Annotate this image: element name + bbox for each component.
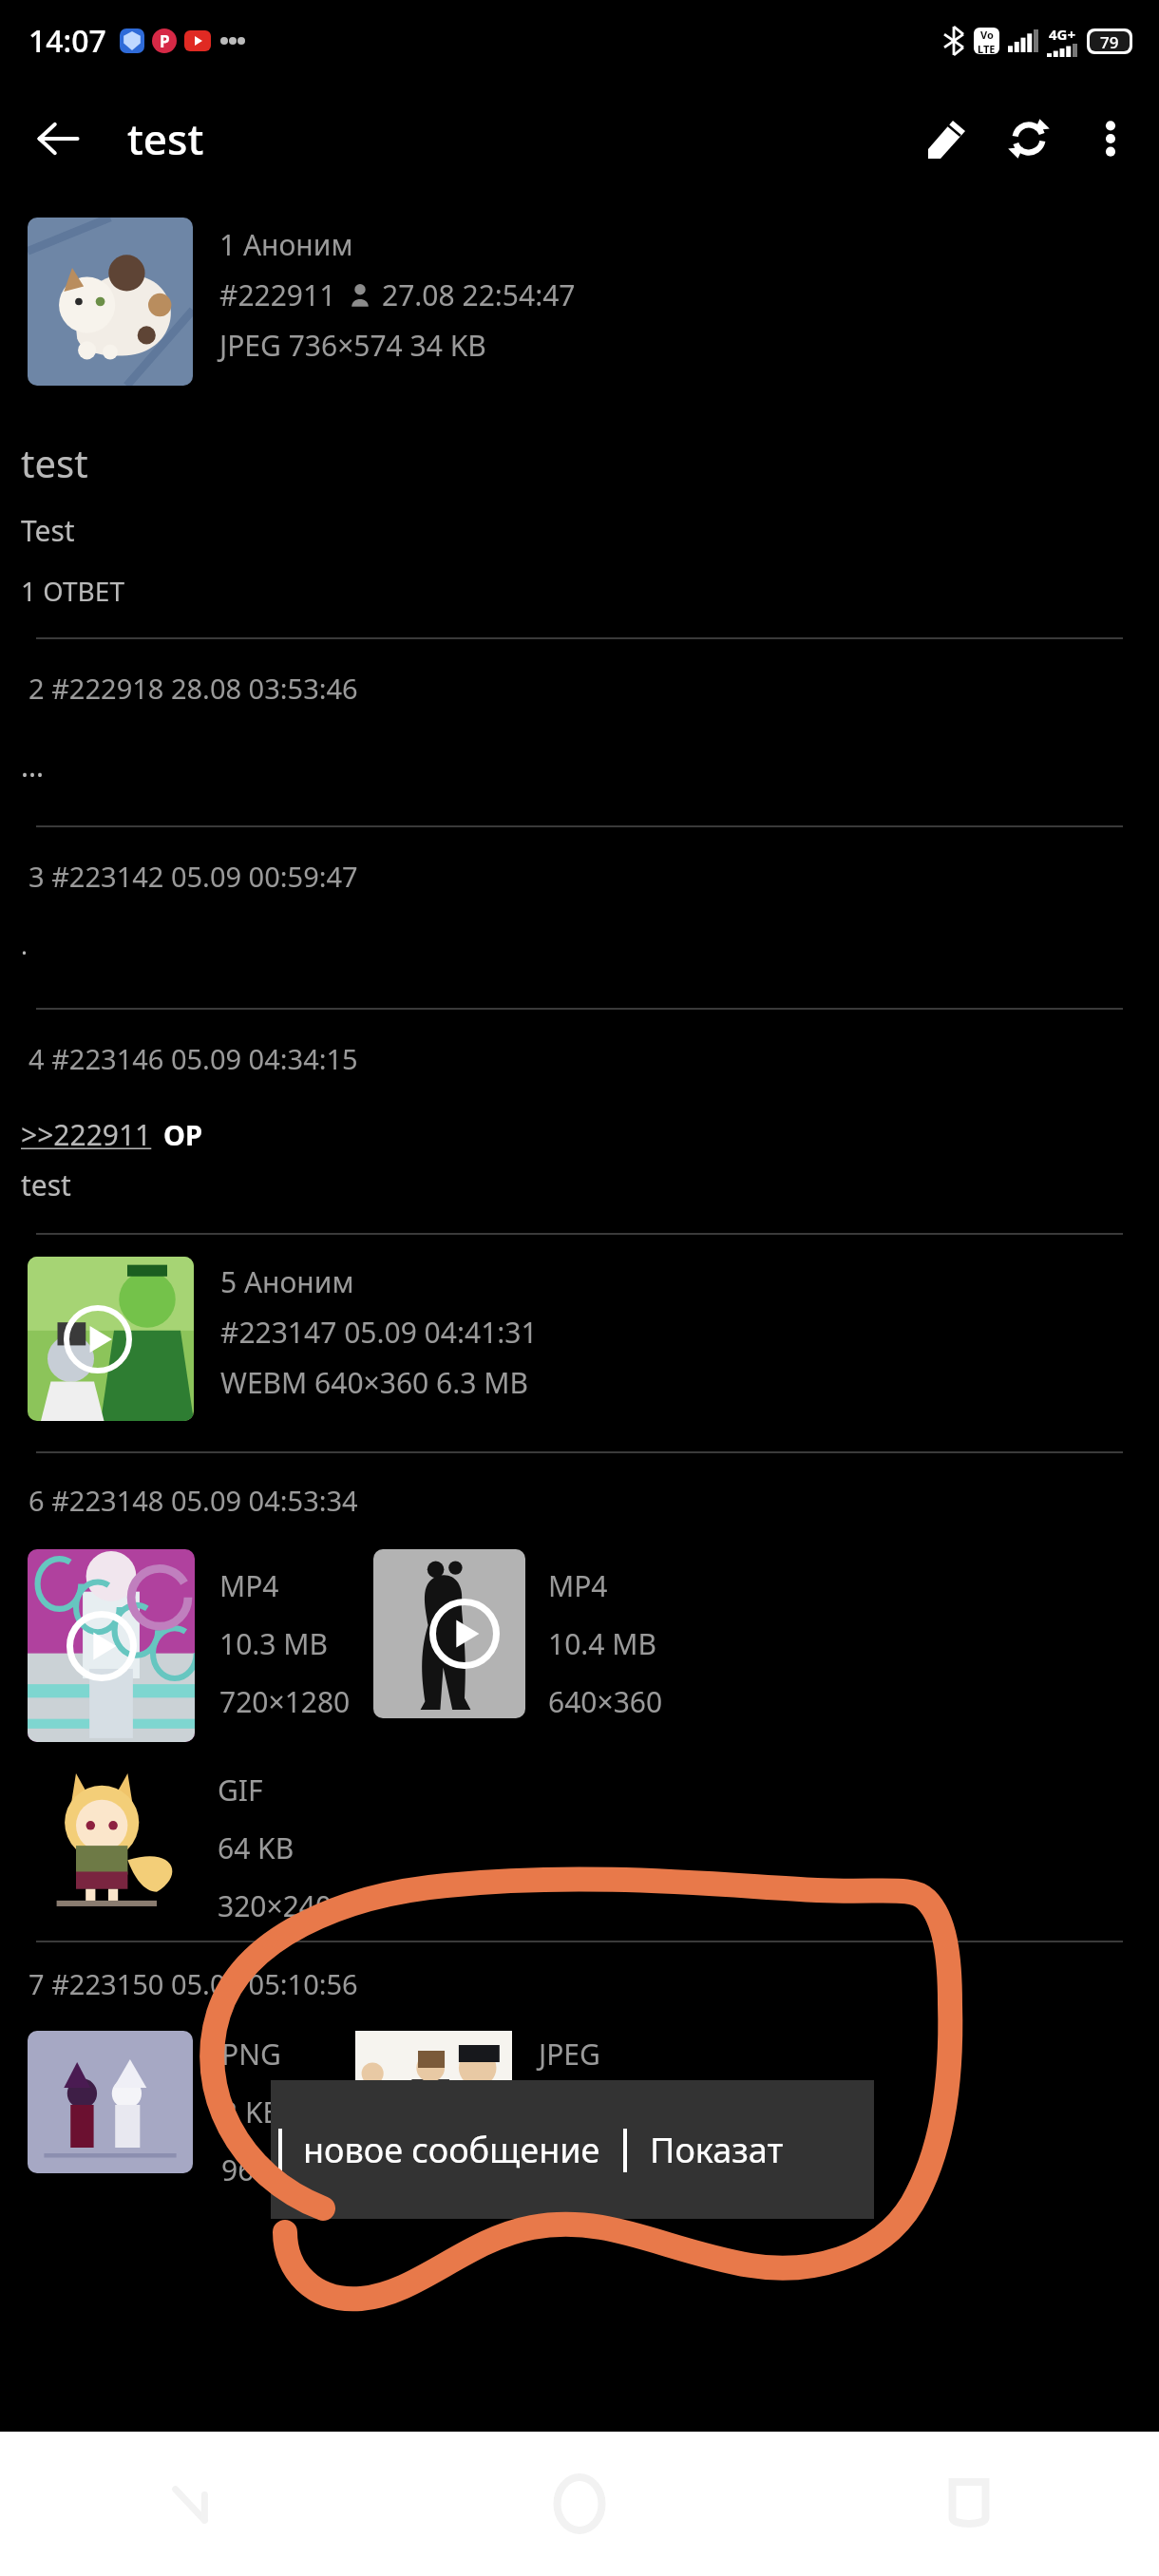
staticText: 14:07 bbox=[28, 20, 106, 62]
staticText: 6 #223148 05.09 04:53:34 bbox=[28, 1482, 358, 1519]
staticText: P bbox=[160, 30, 170, 52]
staticText: 320×240 bbox=[218, 1886, 332, 1925]
button[interactable]: 3 #223142 05.09 00:59:47 bbox=[0, 827, 1159, 1008]
button[interactable]: новое сообщение bbox=[271, 2080, 874, 2219]
button[interactable]: More options bbox=[1070, 98, 1151, 180]
staticText: · bbox=[21, 935, 28, 968]
staticText: 3 #223142 05.09 00:59:47 bbox=[28, 858, 358, 895]
staticText: GIF bbox=[218, 1771, 263, 1809]
button[interactable]: 2 #222918 28.08 03:53:46 bbox=[0, 639, 1159, 825]
button[interactable]: 4 #223146 05.09 04:34:15 bbox=[0, 1010, 1159, 1233]
staticText: ... bbox=[21, 747, 45, 786]
staticText: 7 #223150 05.09 05:10:56 bbox=[28, 1965, 358, 2002]
staticText: 4 #223146 05.09 04:34:15 bbox=[28, 1040, 358, 1077]
staticText: Vo bbox=[980, 28, 994, 42]
staticText: 5 Аноним bbox=[220, 1262, 354, 1301]
staticText: #222911 bbox=[219, 275, 336, 314]
staticText: 960×720 bbox=[221, 2150, 336, 2189]
staticText: JPEG 736×574 34 KB bbox=[219, 326, 486, 365]
button[interactable]: >>222911 bbox=[21, 1115, 152, 1154]
staticText: LTE bbox=[978, 42, 996, 54]
staticText: новое сообщение bbox=[303, 2127, 600, 2173]
button[interactable]: Recent apps bbox=[921, 2456, 1016, 2551]
button[interactable]: Refresh bbox=[988, 98, 1070, 180]
staticText: test bbox=[127, 110, 204, 167]
staticText: JPEG bbox=[539, 2035, 600, 2074]
staticText: test bbox=[21, 1165, 71, 1204]
button[interactable]: Back bbox=[19, 100, 97, 178]
staticText: #223147 05.09 04:41:31 bbox=[220, 1313, 538, 1352]
staticText: 1 ОТВЕТ bbox=[21, 573, 124, 609]
staticText: OP bbox=[163, 1116, 202, 1153]
staticText: WEBM 640×360 6.3 MB bbox=[220, 1363, 528, 1402]
button[interactable]: 7 #223150 05.09 05:10:56 bbox=[0, 1942, 1159, 2189]
staticText: Test bbox=[21, 511, 75, 550]
staticText: 1 Аноним bbox=[219, 225, 353, 264]
button[interactable]: 5 Аноним bbox=[0, 1235, 1159, 1451]
staticText: 720×1280 bbox=[219, 1682, 351, 1721]
staticText: 640×360 bbox=[548, 1682, 663, 1721]
staticText: 2 KB bbox=[221, 2093, 282, 2131]
staticText: 10.4 MB bbox=[548, 1624, 657, 1663]
staticText: 27.08 22:54:47 bbox=[382, 275, 576, 314]
staticText: 10.3 MB bbox=[219, 1624, 329, 1663]
staticText: test bbox=[21, 437, 88, 488]
staticText: 79 bbox=[1100, 31, 1119, 51]
staticText: 4G+ bbox=[1049, 25, 1076, 44]
staticText: 64 KB bbox=[218, 1828, 294, 1867]
staticText: MP4 bbox=[548, 1566, 608, 1605]
staticText: 2 #222918 28.08 03:53:46 bbox=[28, 670, 358, 707]
staticText: Показат bbox=[650, 2127, 784, 2173]
button[interactable]: Home bbox=[527, 2452, 632, 2556]
staticText: PNG bbox=[221, 2035, 281, 2074]
button[interactable]: 1 Аноним bbox=[0, 196, 1159, 637]
staticText: 350×352 bbox=[539, 2150, 654, 2189]
staticText: MP4 bbox=[219, 1566, 279, 1605]
button[interactable]: Write post bbox=[906, 98, 988, 180]
button[interactable]: 6 #223148 05.09 04:53:34 bbox=[0, 1453, 1159, 1941]
